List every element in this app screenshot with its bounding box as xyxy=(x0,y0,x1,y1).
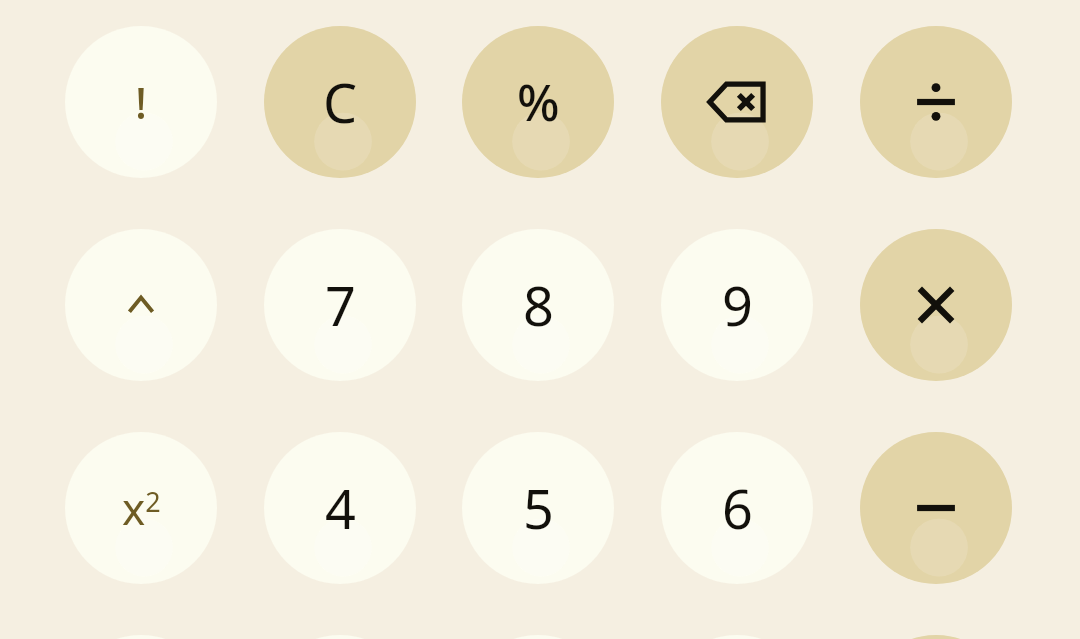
staticText: 7 xyxy=(325,268,356,342)
button[interactable]: 5 xyxy=(462,432,614,584)
button[interactable]: 9 xyxy=(661,229,813,381)
staticText: x2 xyxy=(122,478,161,538)
button[interactable]: Add xyxy=(860,635,1012,639)
staticText: 8 xyxy=(523,268,554,342)
button[interactable]: Square root xyxy=(65,635,217,639)
button[interactable]: 2 xyxy=(462,635,614,639)
button[interactable]: Multiply xyxy=(860,229,1012,381)
button[interactable]: 6 xyxy=(661,432,813,584)
button[interactable]: ! xyxy=(65,26,217,178)
button[interactable] xyxy=(65,229,217,381)
button[interactable]: x2 xyxy=(65,432,217,584)
staticText: % xyxy=(517,68,560,136)
staticText: C xyxy=(323,65,358,139)
button[interactable]: % xyxy=(462,26,614,178)
button[interactable]: 4 xyxy=(264,432,416,584)
button[interactable]: 7 xyxy=(264,229,416,381)
button[interactable]: Backspace xyxy=(661,26,813,178)
button[interactable]: Divide xyxy=(860,26,1012,178)
staticText: 5 xyxy=(523,471,554,545)
button[interactable]: 8 xyxy=(462,229,614,381)
staticText: 4 xyxy=(325,471,356,545)
staticText: 6 xyxy=(722,471,753,545)
button[interactable]: 3 xyxy=(661,635,813,639)
staticText: 9 xyxy=(722,268,753,342)
button[interactable]: 1 xyxy=(264,635,416,639)
button[interactable]: C xyxy=(264,26,416,178)
button[interactable]: Subtract xyxy=(860,432,1012,584)
staticText: ! xyxy=(135,72,148,132)
